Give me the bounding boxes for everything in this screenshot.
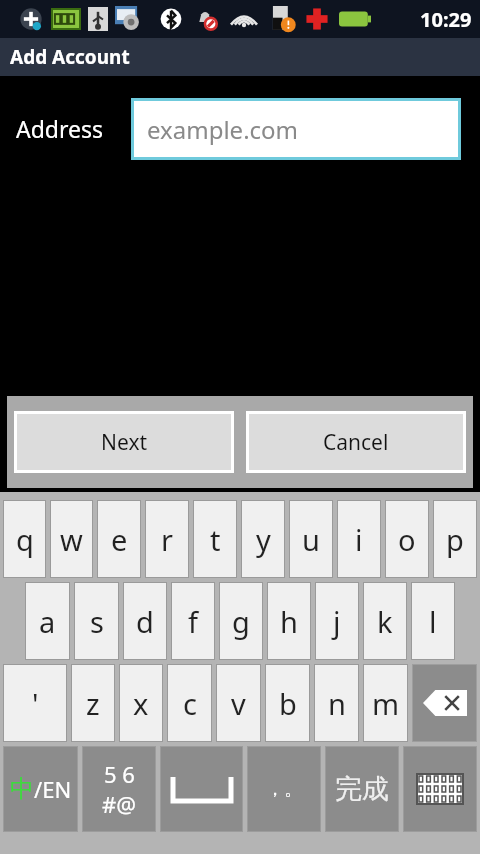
button[interactable]: h <box>268 583 310 659</box>
staticText: b <box>279 684 297 723</box>
button[interactable]: t <box>194 501 236 577</box>
button[interactable]: g <box>220 583 262 659</box>
button[interactable]: s <box>75 583 118 659</box>
staticText: z <box>86 684 100 723</box>
staticText: g <box>232 602 250 641</box>
staticText: 10:29 <box>420 6 472 33</box>
staticText: ' <box>32 684 39 723</box>
staticText: q <box>16 520 34 559</box>
button[interactable]: ' <box>4 665 66 741</box>
staticText: /EN <box>34 774 72 804</box>
button[interactable]: b <box>266 665 309 741</box>
button[interactable]: u <box>290 501 332 577</box>
button[interactable]: i <box>338 501 380 577</box>
staticText: u <box>302 520 320 559</box>
staticText: d <box>136 602 154 641</box>
staticText: i <box>355 520 363 559</box>
button[interactable]: Symbols <box>83 747 155 831</box>
button[interactable]: e <box>98 501 140 577</box>
button[interactable]: m <box>364 665 407 741</box>
staticText: x <box>133 684 149 723</box>
button[interactable]: Backspace <box>413 665 476 741</box>
button[interactable]: a <box>26 583 69 659</box>
button[interactable]: Next <box>17 414 231 470</box>
button[interactable]: f <box>172 583 214 659</box>
staticText: c <box>183 684 197 723</box>
staticText: y <box>256 520 271 559</box>
staticText: Address <box>16 113 104 144</box>
staticText: a <box>39 602 56 641</box>
staticText: 5 6 <box>104 759 135 789</box>
button[interactable]: z <box>72 665 114 741</box>
button[interactable]: Space <box>161 747 242 831</box>
button[interactable]: Comma period <box>248 747 320 831</box>
button[interactable]: k <box>364 583 406 659</box>
staticText: t <box>210 520 221 559</box>
staticText: e <box>111 520 128 559</box>
staticText: o <box>398 520 416 559</box>
staticText: l <box>429 602 437 641</box>
staticText: r <box>161 520 173 559</box>
staticText: ，。 <box>266 778 302 801</box>
staticText: h <box>280 602 298 641</box>
staticText: Cancel <box>323 428 389 457</box>
staticText: m <box>372 684 400 723</box>
staticText: s <box>90 602 104 641</box>
staticText: p <box>446 520 464 559</box>
button[interactable]: w <box>51 501 92 577</box>
button[interactable]: Done <box>326 747 398 831</box>
staticText: Add Account <box>10 44 130 70</box>
button[interactable]: example.com <box>134 101 458 157</box>
staticText: 完成 <box>335 772 389 806</box>
staticText: k <box>377 602 393 641</box>
staticText: v <box>231 684 246 723</box>
button[interactable]: c <box>168 665 211 741</box>
button[interactable]: Chinese English toggle <box>4 747 77 831</box>
button[interactable]: n <box>315 665 358 741</box>
button[interactable]: j <box>316 583 358 659</box>
staticText: j <box>333 602 341 641</box>
button[interactable]: x <box>120 665 162 741</box>
button[interactable]: Keyboard layout <box>404 747 476 831</box>
staticText: example.com <box>147 113 299 146</box>
staticText: f <box>188 602 198 641</box>
button[interactable]: o <box>386 501 428 577</box>
button[interactable]: q <box>4 501 45 577</box>
staticText: 中 <box>10 774 34 804</box>
button[interactable]: Cancel <box>249 414 463 470</box>
button[interactable]: r <box>146 501 188 577</box>
staticText: Next <box>101 428 148 457</box>
button[interactable]: v <box>217 665 260 741</box>
button[interactable]: y <box>242 501 284 577</box>
staticText: #@ <box>102 789 136 819</box>
staticText: w <box>60 520 83 559</box>
button[interactable]: d <box>124 583 166 659</box>
staticText: n <box>328 684 346 723</box>
button[interactable]: l <box>412 583 454 659</box>
button[interactable]: p <box>434 501 476 577</box>
